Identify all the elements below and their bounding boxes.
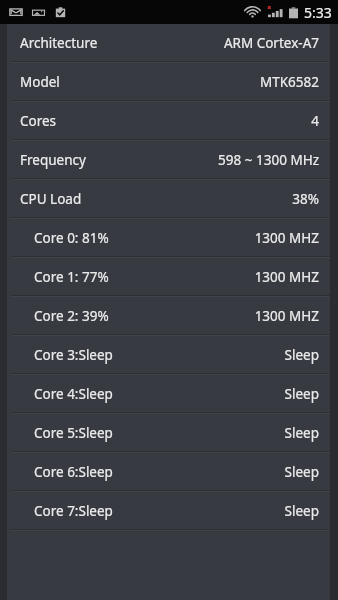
button[interactable]: Core 7:Sleep (7, 492, 330, 529)
staticText: MTK6582 (260, 73, 319, 91)
staticText: Sleep (284, 463, 319, 481)
staticText: Core 7:Sleep (34, 502, 113, 520)
staticText: 4 (311, 112, 319, 130)
staticText: Core 5:Sleep (34, 424, 113, 442)
button[interactable]: Architecture (7, 24, 330, 61)
button[interactable]: Cores (7, 102, 330, 139)
button[interactable]: Model (7, 63, 330, 100)
staticText: Frequency (20, 151, 86, 169)
staticText: Core 4:Sleep (34, 385, 113, 403)
button[interactable]: Core 6:Sleep (7, 453, 330, 490)
staticText: CPU Load (20, 190, 82, 208)
staticText: Cores (20, 112, 57, 130)
button[interactable]: Core 3:Sleep (7, 336, 330, 373)
button[interactable]: Core 5:Sleep (7, 414, 330, 451)
staticText: ARM Cortex-A7 (223, 34, 319, 52)
staticText: Core 0: 81% (34, 229, 109, 247)
staticText: Core 6:Sleep (34, 463, 113, 481)
button[interactable]: Core 2: 39% (7, 297, 330, 334)
staticText: 38% (292, 190, 319, 208)
staticText: Sleep (284, 424, 319, 442)
staticText: Core 3:Sleep (34, 346, 113, 364)
staticText: Model (20, 73, 60, 91)
button[interactable]: Core 1: 77% (7, 258, 330, 295)
staticText: Sleep (284, 385, 319, 403)
staticText: 598 ~ 1300 MHz (218, 151, 319, 169)
staticText: Sleep (284, 346, 319, 364)
staticText: 5:33 (304, 3, 332, 22)
staticText: Architecture (20, 34, 98, 52)
button[interactable]: Core 0: 81% (7, 219, 330, 256)
button[interactable]: Frequency (7, 141, 330, 178)
staticText: 1300 MHZ (254, 229, 319, 247)
staticText: Core 2: 39% (34, 307, 109, 325)
button[interactable]: CPU Load (7, 180, 330, 217)
staticText: 1300 MHZ (254, 307, 319, 325)
staticText: Core 1: 77% (34, 268, 109, 286)
staticText: Sleep (284, 502, 319, 520)
button[interactable]: Core 4:Sleep (7, 375, 330, 412)
staticText: 1300 MHZ (254, 268, 319, 286)
